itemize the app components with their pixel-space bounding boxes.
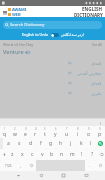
button[interactable]: 8	[72, 126, 83, 138]
button[interactable]: b	[47, 149, 57, 160]
staticText: Venture	[3, 48, 24, 56]
button[interactable]: Search	[96, 138, 105, 149]
staticText: Word of the Day	[3, 42, 34, 47]
staticText: b	[50, 151, 54, 158]
button[interactable]: Shift	[0, 149, 8, 160]
staticText: a	[7, 140, 10, 147]
button[interactable]: Recents	[59, 171, 68, 180]
button[interactable]: Search Dictionary	[3, 21, 102, 29]
staticText: WEB	[12, 12, 21, 17]
staticText: l	[90, 140, 92, 147]
staticText: 1	[4, 127, 6, 131]
button[interactable]: Play pronunciation	[4, 58, 101, 68]
staticText: k	[80, 140, 83, 147]
staticText: y	[54, 131, 57, 138]
staticText: z	[11, 151, 14, 158]
button[interactable]: 5	[40, 126, 50, 138]
staticText: s	[18, 140, 21, 147]
staticText: u	[65, 131, 69, 138]
button[interactable]: Back	[14, 171, 23, 180]
staticText: تجارتی آمدنی	[76, 70, 101, 76]
staticText: r	[34, 131, 37, 138]
button[interactable]: Menu	[1, 9, 8, 16]
staticText: ?	[91, 151, 94, 158]
button[interactable]: f	[36, 138, 46, 149]
button[interactable]: h	[56, 138, 66, 149]
button[interactable]: n	[57, 149, 67, 160]
button[interactable]: Play pronunciation	[4, 88, 101, 98]
staticText: j	[70, 140, 72, 147]
staticText: 4	[35, 127, 37, 131]
staticText: 2	[14, 127, 16, 131]
button[interactable]: 3	[20, 126, 30, 138]
staticText: 7	[66, 127, 68, 131]
other: Play pronunciation	[25, 50, 30, 55]
other: Play pronunciation	[68, 61, 72, 65]
button[interactable]: 2	[10, 126, 20, 138]
button[interactable]: Keyboard settings	[95, 160, 105, 171]
button[interactable]: Play pronunciation	[4, 68, 101, 78]
button[interactable]: Play pronunciation	[4, 78, 101, 88]
staticText: .	[89, 163, 91, 169]
staticText: e	[24, 131, 27, 138]
button[interactable]: s	[14, 138, 25, 149]
button[interactable]: 9	[83, 126, 94, 138]
button[interactable]: k	[76, 138, 86, 149]
button[interactable]: Home	[37, 171, 46, 180]
button[interactable]: v	[37, 149, 47, 160]
staticText: تقریر	[91, 91, 101, 96]
button[interactable]: 6	[50, 126, 61, 138]
other: Play pronunciation	[68, 81, 72, 85]
button[interactable]: AWAMI	[8, 7, 27, 17]
button[interactable]: Venture	[3, 48, 30, 56]
staticText: 6	[55, 127, 57, 131]
button[interactable]: !	[77, 149, 87, 160]
button[interactable]: m	[67, 149, 77, 160]
button[interactable]: Backspace	[97, 149, 105, 160]
staticText: See All	[92, 43, 102, 47]
staticText: m	[70, 151, 75, 158]
staticText: d	[29, 140, 33, 147]
button[interactable]: More suggestions	[98, 121, 102, 125]
staticText: ENGLISH	[82, 6, 103, 12]
button[interactable]: ?	[87, 149, 97, 160]
staticText: 5	[44, 127, 46, 131]
button[interactable]: d	[25, 138, 36, 149]
button[interactable]: 7	[61, 126, 72, 138]
button[interactable]: ,	[16, 160, 26, 171]
staticText: اقدام	[91, 61, 101, 66]
button[interactable]: Switch keyboard	[82, 171, 91, 180]
staticText: 9	[88, 127, 90, 131]
button[interactable]: l	[86, 138, 96, 149]
button[interactable]: z	[8, 149, 17, 160]
button[interactable]: c	[27, 149, 37, 160]
button[interactable]: 1	[0, 126, 10, 138]
button[interactable]: Language toggle	[51, 33, 59, 37]
staticText: w	[13, 131, 17, 138]
button[interactable]: j	[66, 138, 76, 149]
staticText: p	[98, 131, 102, 138]
button[interactable]: Emoji	[26, 160, 36, 171]
other: Play pronunciation	[68, 91, 72, 95]
staticText: f	[40, 140, 42, 147]
button[interactable]: x	[17, 149, 27, 160]
staticText: v	[41, 151, 44, 158]
staticText: 3	[25, 127, 27, 131]
staticText: i	[77, 131, 79, 138]
staticText: 8	[77, 127, 79, 131]
staticText: c	[31, 151, 34, 158]
staticText: !	[81, 151, 83, 158]
button[interactable]: 4	[30, 126, 40, 138]
staticText: o	[87, 131, 91, 138]
button[interactable]: See All	[92, 43, 102, 47]
button[interactable]: 0	[94, 126, 105, 138]
staticText: q	[3, 131, 7, 138]
button[interactable]: ?123	[0, 160, 16, 171]
button[interactable]: a	[3, 138, 14, 149]
staticText: اردو سے انگلش	[61, 32, 84, 37]
staticText: ,	[20, 163, 22, 169]
button[interactable]: g	[46, 138, 56, 149]
staticText: اقدام	[91, 81, 101, 86]
